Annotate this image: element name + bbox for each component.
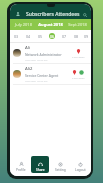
staticText: 03 xyxy=(14,34,19,39)
staticText: Service Center Agent xyxy=(25,73,59,78)
button[interactable]: Ali2 xyxy=(10,64,91,84)
button[interactable]: Profile xyxy=(12,156,29,173)
staticText: Ali xyxy=(25,45,31,51)
staticText: Network Administrator xyxy=(25,52,62,57)
button[interactable]: August 2018 xyxy=(37,19,64,30)
staticText: 5 km away xyxy=(72,55,85,58)
staticText: July 2018 xyxy=(15,22,32,27)
staticText: 07 xyxy=(62,34,67,39)
button[interactable]: Share xyxy=(31,156,49,173)
button[interactable]: Sept 2018 xyxy=(64,19,91,30)
staticText: August 2018 xyxy=(38,22,63,27)
button[interactable]: Search xyxy=(80,10,89,19)
button[interactable]: 04 xyxy=(22,30,34,42)
staticText: Ali2 xyxy=(25,66,33,72)
button[interactable]: July 2018 xyxy=(10,19,37,30)
staticText: Logout xyxy=(75,168,86,172)
button[interactable]: Account xyxy=(14,10,22,18)
staticText: Last seen 10:30 am xyxy=(25,58,48,61)
button[interactable]: Logout xyxy=(71,156,89,173)
button[interactable]: 05 xyxy=(34,30,46,42)
button[interactable]: 08 xyxy=(70,30,82,42)
staticText: Setting xyxy=(55,168,66,172)
staticText: 5 km away xyxy=(72,76,85,79)
staticText: 06 xyxy=(50,34,54,39)
button[interactable]: 09 xyxy=(82,30,91,42)
button[interactable]: Ali xyxy=(10,43,91,63)
staticText: Share xyxy=(36,168,45,172)
staticText: 08 xyxy=(74,34,79,39)
staticText: Profile xyxy=(16,168,26,172)
staticText: 04 xyxy=(26,34,31,39)
staticText: Sept 2018 xyxy=(68,22,87,27)
button[interactable]: Setting xyxy=(51,156,69,173)
button[interactable]: 06 xyxy=(46,30,58,42)
staticText: Last seen 10:30 am xyxy=(25,79,48,82)
staticText: 09 xyxy=(84,34,89,39)
staticText: Subscribers Attendees xyxy=(26,11,80,18)
staticText: 05 xyxy=(38,34,43,39)
button[interactable]: 03 xyxy=(10,30,22,42)
button[interactable]: 07 xyxy=(58,30,70,42)
